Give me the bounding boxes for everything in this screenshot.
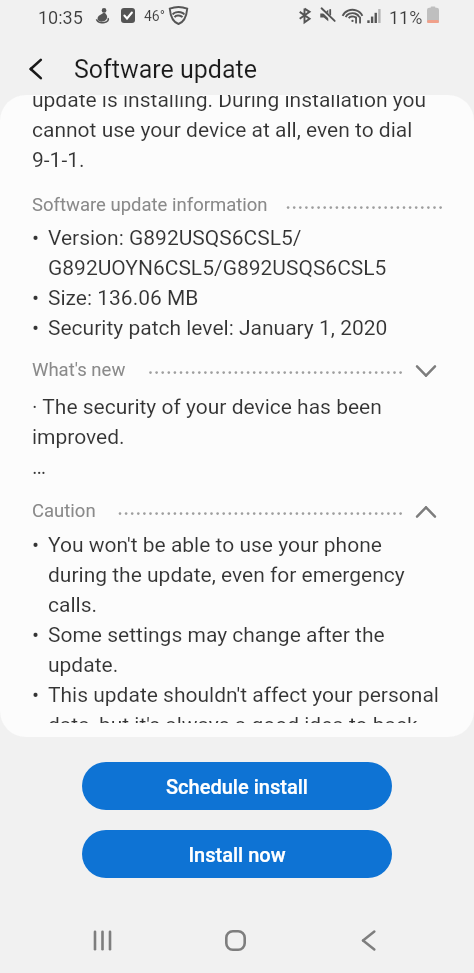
staticText: • [32,528,48,558]
staticText: Install now [188,843,286,866]
staticText: • [32,618,48,648]
staticText: 46° [144,8,165,24]
button[interactable]: Recent apps [62,914,142,966]
staticText: 10:35 [38,7,83,28]
button[interactable]: Install now [82,830,392,878]
staticText: This update shouldn't affect your person… [48,678,442,723]
staticText: What's new [32,359,126,381]
staticText: 11% [389,7,423,28]
button[interactable]: Back [16,49,56,89]
button[interactable]: Back [328,914,408,966]
button[interactable]: Home [195,914,275,966]
staticText: Security patch level: January 1, 2020 [48,311,388,341]
button[interactable]: Caution [32,493,442,527]
staticText: update is installing. During installatio… [32,95,442,173]
staticText: Software update information [32,194,268,216]
staticText: Size: 136.06 MB [48,281,199,311]
staticText: Version: G892USQS6CSL5/G892UOYN6CSL5/G89… [48,221,442,281]
staticText: Schedule install [166,775,308,798]
staticText: … [32,450,47,480]
staticText: • [32,281,48,311]
button[interactable]: Schedule install [82,762,392,810]
staticText: • [32,221,48,251]
button[interactable]: Software update information [32,187,442,221]
staticText: Some settings may change after the updat… [48,618,442,678]
staticText: • [32,678,48,708]
button[interactable]: What's new [32,352,442,386]
staticText: You won't be able to use your phone duri… [48,528,442,618]
staticText: Software update [74,55,258,84]
staticText: • [32,311,48,341]
staticText: · The security of your device has been i… [32,390,442,450]
staticText: Caution [32,500,96,522]
